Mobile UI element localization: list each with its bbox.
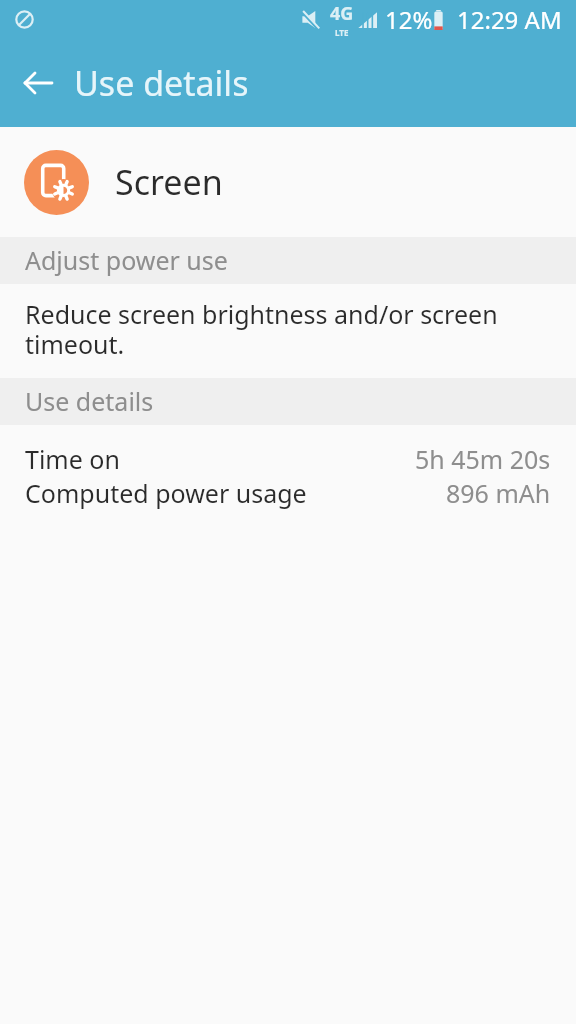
staticText: 12% xyxy=(385,3,433,36)
staticText: Computed power usage xyxy=(25,476,307,510)
staticText: Screen xyxy=(115,159,223,205)
button[interactable]: Computed power usage xyxy=(0,476,576,510)
staticText: Adjust power use xyxy=(25,243,228,277)
staticText: Time on xyxy=(25,442,120,476)
staticText: 896 mAh xyxy=(446,476,551,510)
staticText: Reduce screen brightness and/or screen t… xyxy=(25,297,514,362)
button[interactable]: Reduce screen brightness and/or screen t… xyxy=(0,284,576,378)
button[interactable]: Screen xyxy=(0,127,576,237)
staticText: 12:29 AM xyxy=(457,3,562,36)
staticText: 4G xyxy=(330,1,354,26)
staticText: LTE xyxy=(335,27,349,38)
other: Sound muted xyxy=(302,10,321,29)
other: Do not disturb xyxy=(15,10,34,29)
other: Battery 12 percent xyxy=(433,10,444,30)
staticText: 5h 45m 20s xyxy=(415,442,551,476)
staticText: Use details xyxy=(74,60,249,106)
staticText: Use details xyxy=(25,384,154,418)
other: Signal strength xyxy=(358,10,377,29)
button[interactable]: Back xyxy=(10,55,66,111)
button[interactable]: Time on xyxy=(0,442,576,476)
